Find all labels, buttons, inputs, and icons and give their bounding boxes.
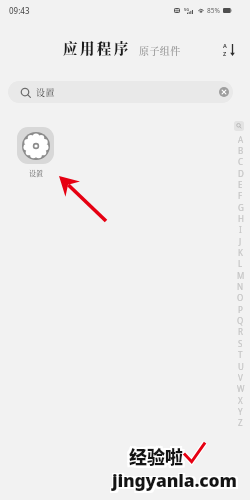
staticText: 09:43	[9, 5, 30, 16]
staticText: jingyanla.com	[114, 467, 239, 491]
button[interactable]: J	[234, 236, 247, 247]
staticText: A	[223, 42, 227, 49]
staticText: Z	[238, 417, 243, 428]
staticText: F	[238, 190, 243, 201]
button[interactable]: Search index	[234, 121, 244, 131]
button[interactable]: P	[234, 304, 247, 315]
staticText: 设置	[36, 86, 55, 99]
button[interactable]: Sort A to Z	[216, 36, 242, 62]
button[interactable]: B	[234, 145, 247, 156]
staticText: B	[238, 145, 244, 156]
staticText: 经验啦	[129, 443, 183, 469]
staticText: E	[238, 179, 243, 190]
staticText: 85%	[207, 6, 220, 15]
button[interactable]: 设置	[17, 127, 54, 178]
staticText: 经验啦	[127, 445, 181, 471]
staticText: K	[238, 247, 243, 258]
staticText: jingyanla.com	[112, 467, 237, 491]
staticText: S	[238, 338, 243, 349]
staticText: 经验啦	[129, 441, 183, 467]
staticText: 设置	[29, 168, 43, 178]
button[interactable]: C	[234, 156, 247, 167]
staticText: 原子组件	[139, 43, 181, 57]
staticText: P	[238, 304, 243, 315]
staticText: jingyanla.com	[111, 470, 236, 494]
staticText: Q	[237, 315, 244, 326]
staticText: A	[238, 134, 244, 145]
staticText: 应用程序	[63, 37, 131, 58]
button[interactable]: Q	[234, 315, 247, 326]
button[interactable]: K	[234, 247, 247, 258]
staticText: jingyanla.com	[111, 467, 236, 491]
staticText: jingyanla.com	[112, 468, 237, 492]
staticText: jingyanla.com	[114, 468, 239, 492]
button[interactable]: U	[234, 361, 247, 372]
button[interactable]: T	[234, 349, 247, 360]
staticText: O	[237, 292, 244, 303]
staticText: Z	[223, 50, 227, 57]
staticText: T	[238, 349, 243, 360]
staticText: G	[238, 202, 244, 213]
button[interactable]: 设置	[8, 81, 233, 103]
staticText: C	[238, 156, 244, 167]
staticText: X	[238, 395, 243, 406]
staticText: D	[238, 168, 244, 179]
staticText: 经验啦	[131, 443, 185, 469]
button[interactable]: Clear	[219, 87, 229, 97]
staticText: W	[237, 383, 245, 394]
staticText: jingyanla.com	[114, 470, 239, 494]
button[interactable]: H	[234, 213, 247, 224]
staticText: 经验啦	[127, 443, 181, 469]
staticText: H	[238, 213, 244, 224]
button[interactable]: E	[234, 179, 247, 190]
staticText: R	[238, 326, 243, 337]
staticText: 经验啦	[127, 441, 181, 467]
button[interactable]: S	[234, 338, 247, 349]
staticText: N	[237, 281, 244, 292]
button[interactable]: A	[234, 134, 247, 145]
staticText: Y	[238, 406, 243, 417]
button[interactable]: Y	[234, 406, 247, 417]
button[interactable]: L	[234, 258, 247, 269]
staticText: L	[238, 258, 243, 269]
button[interactable]: M	[234, 270, 247, 281]
staticText: M	[237, 270, 245, 281]
staticText: 经验啦	[131, 445, 185, 471]
button[interactable]: Z	[234, 417, 247, 428]
button[interactable]: I	[234, 224, 247, 235]
button[interactable]: R	[234, 326, 247, 337]
button[interactable]: F	[234, 190, 247, 201]
button[interactable]: N	[234, 281, 247, 292]
staticText: jingyanla.com	[112, 470, 237, 494]
staticText: J	[239, 236, 242, 247]
button[interactable]: G	[234, 202, 247, 213]
staticText: V	[238, 372, 243, 383]
staticText: U	[238, 361, 244, 372]
button[interactable]: W	[234, 383, 247, 394]
staticText: 经验啦	[129, 445, 183, 471]
staticText: I	[239, 224, 242, 235]
button[interactable]: D	[234, 168, 247, 179]
button[interactable]: X	[234, 395, 247, 406]
staticText: 5G	[184, 7, 190, 12]
button[interactable]: V	[234, 372, 247, 383]
button[interactable]: O	[234, 292, 247, 303]
staticText: jingyanla.com	[111, 468, 236, 492]
staticText: 经验啦	[131, 441, 185, 467]
